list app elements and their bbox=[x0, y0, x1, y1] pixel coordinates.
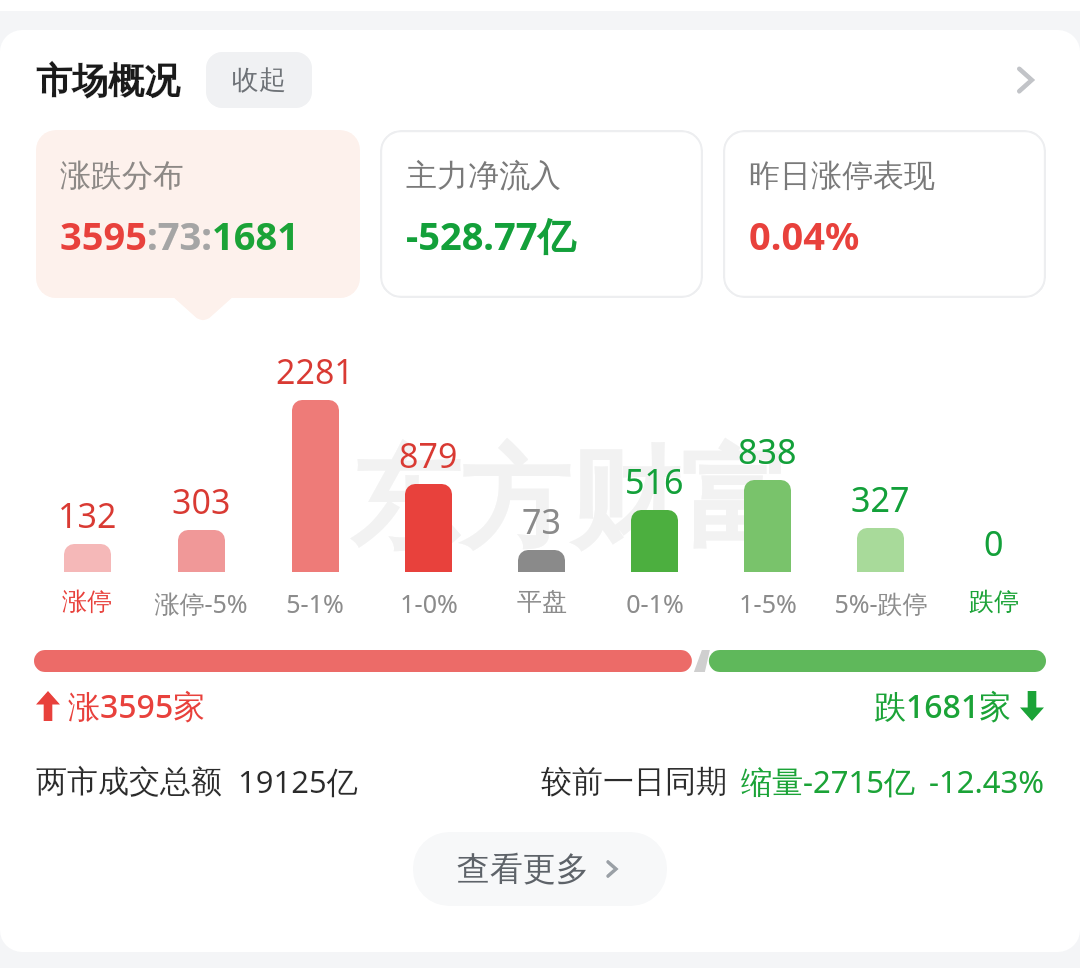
button[interactable]: 查看更多 bbox=[413, 832, 667, 906]
staticText: -528.77亿 bbox=[406, 209, 576, 261]
staticText: 较前一日同期 bbox=[541, 762, 727, 801]
staticText: 19125亿 bbox=[238, 760, 358, 802]
staticText: -12.43% bbox=[929, 760, 1044, 802]
staticText: 879 bbox=[399, 432, 458, 478]
staticText: 市场概况 bbox=[36, 58, 180, 103]
button[interactable]: 主力净流入 bbox=[380, 130, 703, 298]
staticText: 缩量-2715亿 bbox=[741, 760, 915, 802]
staticText: 平盘 bbox=[517, 586, 567, 617]
staticText: 涨3595家 bbox=[68, 684, 206, 728]
staticText: 516 bbox=[625, 458, 684, 504]
staticText: 1-5% bbox=[739, 586, 797, 620]
staticText: 2281 bbox=[276, 348, 354, 394]
staticText: 327 bbox=[851, 476, 910, 522]
staticText: 73 bbox=[522, 498, 561, 544]
staticText: 跌1681家 bbox=[874, 684, 1012, 728]
staticText: 303 bbox=[172, 478, 231, 524]
staticText: 838 bbox=[738, 428, 797, 474]
button[interactable]: 收起 bbox=[206, 52, 312, 108]
staticText: 涨停-5% bbox=[154, 586, 248, 620]
staticText: 跌停 bbox=[969, 586, 1019, 617]
staticText: 涨停 bbox=[62, 586, 112, 617]
staticText: 1681 bbox=[212, 209, 299, 261]
staticText: 收起 bbox=[232, 63, 286, 97]
button[interactable]: 市场概况 bbox=[0, 30, 1080, 130]
staticText: 3595 bbox=[60, 209, 147, 261]
staticText: 0.04% bbox=[749, 209, 860, 261]
staticText: 东方财富 bbox=[350, 431, 790, 570]
staticText: 昨日涨停表现 bbox=[749, 156, 935, 195]
staticText: 132 bbox=[58, 492, 117, 538]
staticText: 两市成交总额 bbox=[36, 762, 222, 801]
staticText: 主力净流入 bbox=[406, 156, 561, 195]
staticText: 查看更多 bbox=[457, 848, 589, 890]
staticText: :73: bbox=[147, 209, 212, 261]
staticText: 0 bbox=[984, 520, 1004, 566]
staticText: 涨跌分布 bbox=[60, 156, 184, 195]
staticText: 5%-跌停 bbox=[834, 586, 928, 620]
button[interactable]: 昨日涨停表现 bbox=[723, 130, 1046, 298]
button[interactable]: More bbox=[998, 53, 1052, 107]
staticText: 0-1% bbox=[626, 586, 684, 620]
staticText: 5-1% bbox=[286, 586, 344, 620]
staticText: 1-0% bbox=[400, 586, 458, 620]
button[interactable]: 涨跌分布 bbox=[36, 130, 360, 298]
